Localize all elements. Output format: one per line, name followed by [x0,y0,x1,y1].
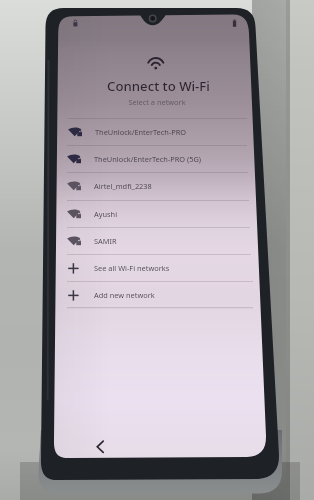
staticText: TheUnlock/EnterTech-PRO (5G) [94,154,202,164]
button[interactable]: TheUnlock/EnterTech-PRO (5G) [67,145,247,172]
staticText: Select a network [128,97,186,107]
button[interactable]: Add new network [67,281,253,308]
button[interactable]: Ayushi [67,200,249,227]
staticText: Connect to Wi-Fi [107,77,210,93]
button[interactable]: See all Wi-Fi networks [67,254,251,281]
button[interactable]: TheUnlock/EnterTech-PRO [68,118,247,145]
staticText: Airtel_mdfi_2238 [94,181,152,191]
staticText: Ayushi [94,209,118,219]
staticText: TheUnlock/EnterTech-PRO [95,127,187,137]
staticText: SAMIR [94,236,117,246]
staticText: Add new network [94,290,155,300]
button[interactable]: Back [90,437,110,457]
staticText: See all Wi-Fi networks [94,263,170,273]
button[interactable]: Airtel_mdfi_2238 [67,172,248,199]
button[interactable]: SAMIR [67,227,250,254]
